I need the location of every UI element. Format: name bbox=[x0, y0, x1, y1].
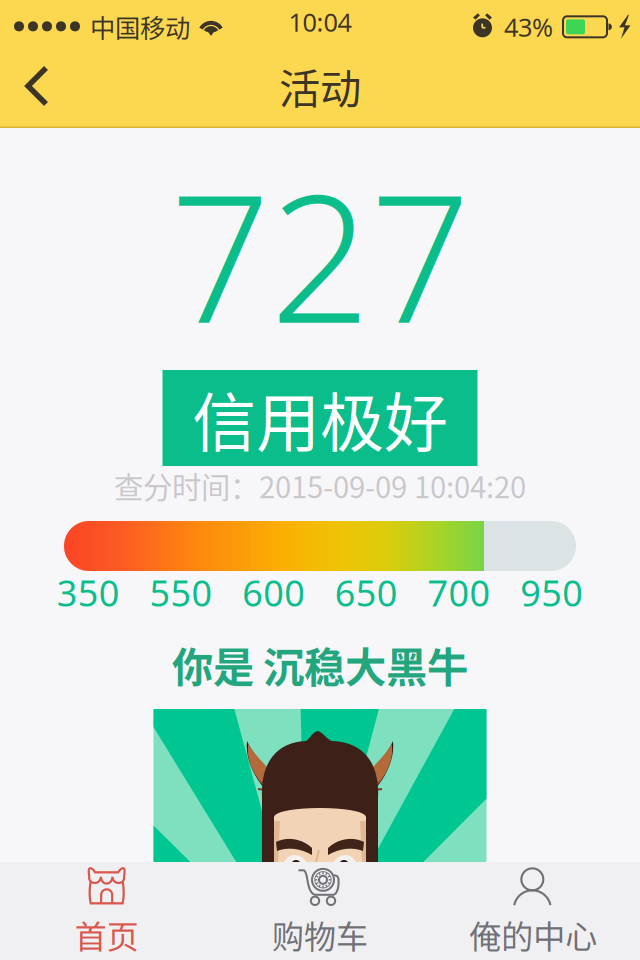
staticText: 10:04 bbox=[288, 5, 351, 39]
staticText: 43% bbox=[504, 10, 553, 44]
staticText: 727 bbox=[170, 138, 470, 371]
button[interactable]: Back bbox=[0, 44, 74, 128]
staticText: 你是 沉稳大黑牛 bbox=[172, 635, 468, 694]
staticText: 600 bbox=[242, 569, 305, 616]
staticText: 700 bbox=[427, 569, 490, 616]
button[interactable]: 购物车 bbox=[213, 862, 427, 960]
staticText: 购物车 bbox=[272, 911, 368, 958]
staticText: 信用极好 bbox=[192, 372, 448, 464]
staticText: 活动 bbox=[279, 56, 361, 116]
staticText: 首页 bbox=[75, 911, 139, 958]
staticText: 350 bbox=[57, 569, 120, 616]
staticText: 俺的中心 bbox=[469, 911, 597, 958]
staticText: 中国移动 bbox=[90, 8, 190, 45]
button[interactable]: 俺的中心 bbox=[427, 862, 640, 960]
staticText: 查分时间：2015-09-09 10:04:20 bbox=[114, 464, 526, 507]
staticText: 950 bbox=[520, 569, 583, 616]
staticText: 650 bbox=[335, 569, 398, 616]
button[interactable]: 首页 bbox=[0, 862, 213, 960]
staticText: 550 bbox=[149, 569, 212, 616]
